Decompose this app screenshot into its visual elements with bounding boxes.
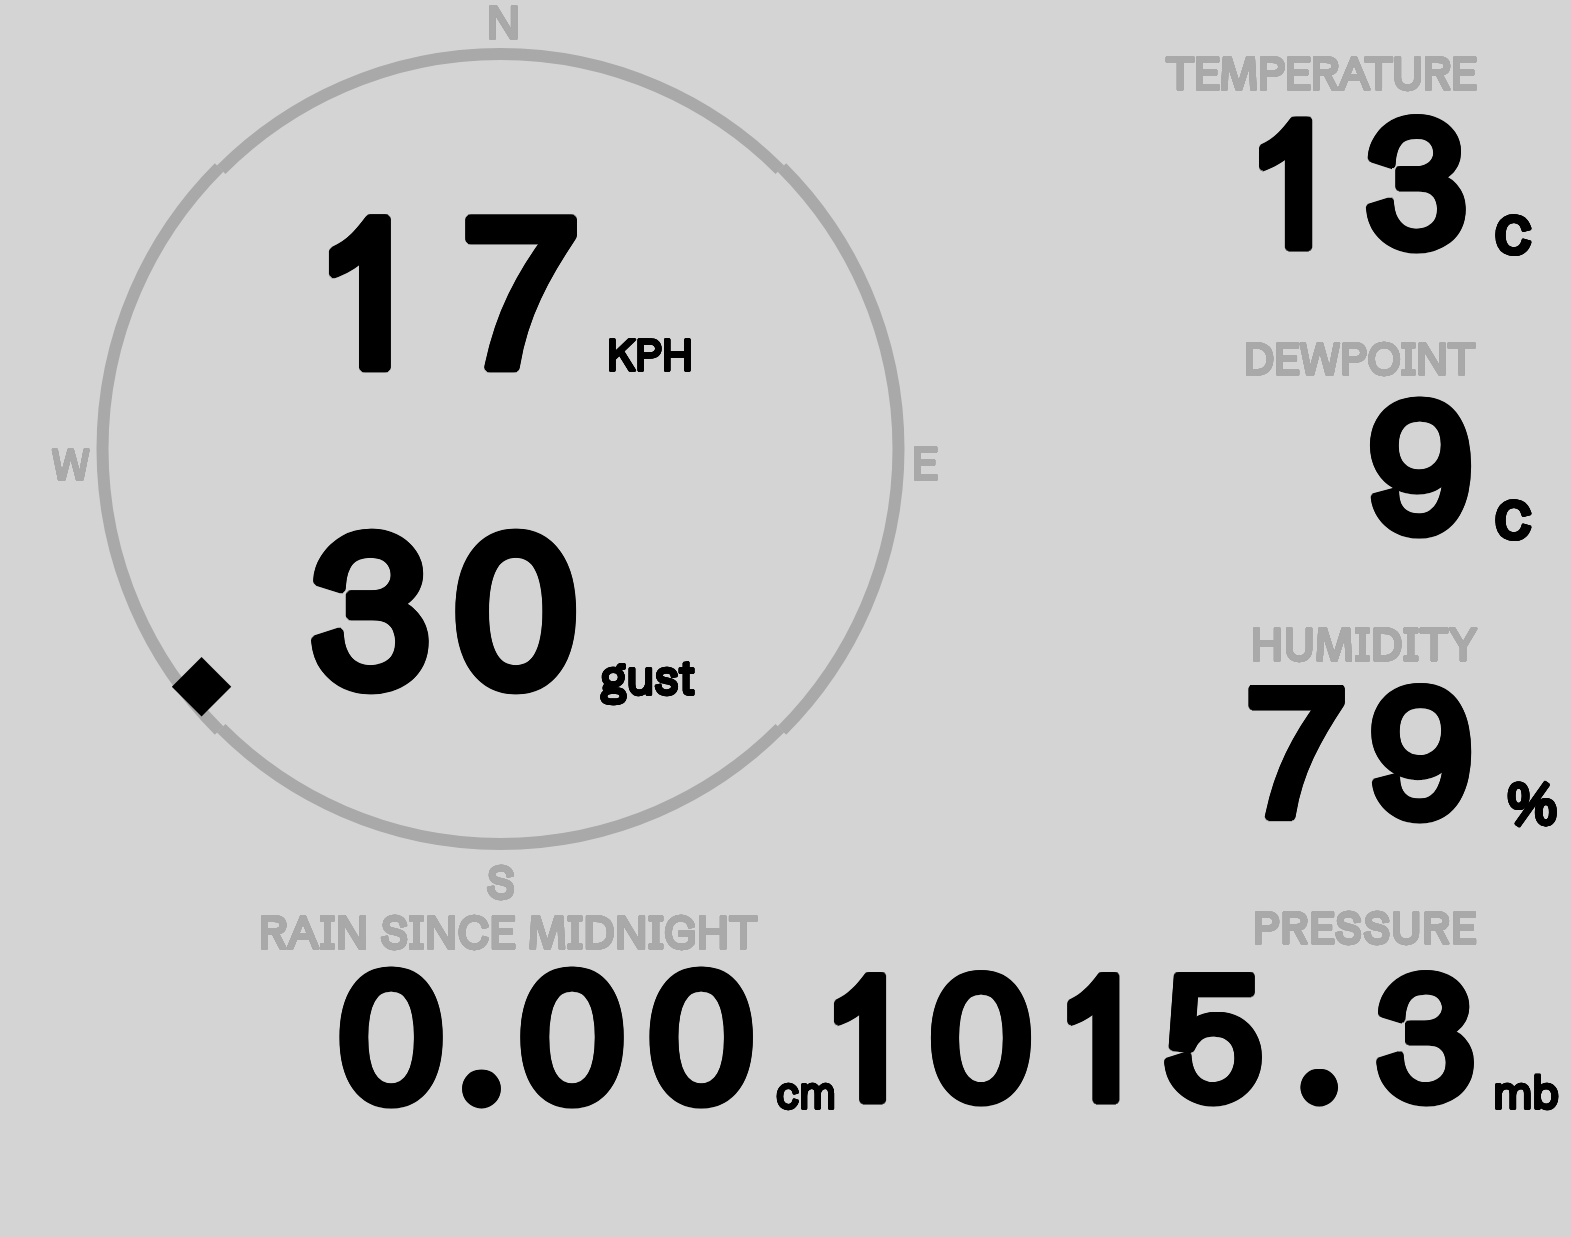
button[interactable]: Weather station dashboard	[0, 0, 1571, 1237]
